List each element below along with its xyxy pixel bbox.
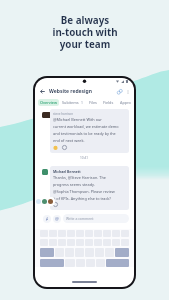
button[interactable]: More options [124,88,131,95]
staticText: Write a comment [66,216,94,221]
staticText: @Michael Bennett With our current worklo… [53,117,119,143]
staticText: Website redesign [49,88,93,95]
staticText: Overview [40,100,57,105]
button[interactable] [35,197,55,206]
button[interactable]: Share [115,87,124,96]
staticText: Approvals [120,100,131,105]
button[interactable]: Mention someone [53,215,61,223]
staticText: 1 [81,100,83,105]
staticText: Subitems [62,100,79,105]
button[interactable]: Overview [38,99,59,106]
button[interactable]: steve harrison [50,109,129,153]
button[interactable]: Fields [100,99,117,106]
staticText: Michael Bennett [53,169,81,174]
button[interactable]: Write a comment [63,214,129,223]
button[interactable]: Michael Bennett [50,166,129,210]
button[interactable]: Approvals [117,99,134,106]
button[interactable]: Subitems [59,99,86,106]
staticText: steve harrison [53,112,74,116]
button[interactable]: Attach file [43,215,51,223]
button[interactable]: Files [86,99,100,106]
staticText: 10:41 [80,156,89,160]
button[interactable]: Back [38,87,46,95]
staticText: Thanks, @Steve Harrison. The progress se… [53,175,115,201]
staticText: Fields [103,100,114,105]
staticText: @ [55,216,59,222]
staticText: Be always in-touch with your team [52,14,118,51]
staticText: Files [89,100,97,105]
